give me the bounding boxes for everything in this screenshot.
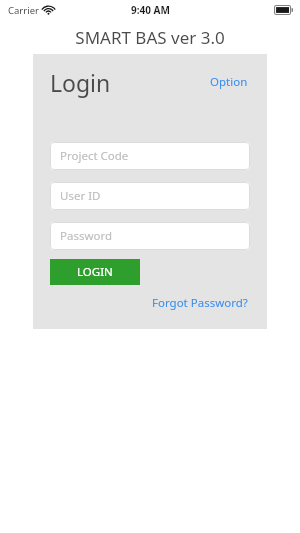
staticText: LOGIN — [77, 264, 113, 280]
staticText: 9:40 AM — [131, 3, 170, 17]
button[interactable]: User ID — [50, 182, 250, 210]
staticText: Option — [210, 74, 248, 90]
button[interactable]: Forgot Password? — [150, 293, 250, 313]
staticText: SMART BAS ver 3.0 — [0, 26, 300, 49]
staticText: Password — [60, 228, 113, 244]
staticText: Forgot Password? — [152, 295, 248, 311]
staticText: User ID — [60, 188, 101, 204]
button[interactable]: LOGIN — [50, 259, 140, 285]
button[interactable]: Project Code — [50, 142, 250, 170]
button[interactable]: Option — [208, 72, 250, 92]
staticText: Login — [50, 67, 111, 98]
staticText: Project Code — [60, 148, 129, 164]
staticText: Carrier — [8, 4, 39, 17]
button[interactable]: Password — [50, 222, 250, 250]
